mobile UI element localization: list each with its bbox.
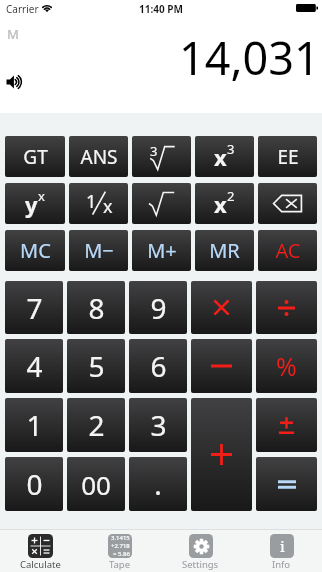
button[interactable]: 1 [69,183,128,224]
button[interactable]: GT [5,136,65,177]
staticText: AC [275,237,301,264]
other: Divide [277,299,296,317]
staticText: y [25,189,38,219]
button[interactable]: 3 [132,136,191,177]
other: Plus [211,444,232,465]
button[interactable]: 2 [67,398,125,452]
staticText: 11:40 PM [139,2,183,16]
button[interactable]: EE [258,136,317,177]
staticText: = 5.86 [113,550,130,558]
button[interactable]: Sound [4,69,30,95]
other: Backspace [273,194,302,213]
button[interactable]: 4 [5,339,63,393]
other: Minus [211,361,232,371]
button[interactable]: ANS [69,136,128,177]
staticText: Tape [109,558,131,571]
staticText: +2.718 [111,542,130,550]
staticText: 00 [81,467,111,502]
button[interactable]: 3.1415 [80,529,160,572]
staticText: 2 [227,187,235,205]
button[interactable]: 8 [67,281,125,334]
staticText: 0 [26,465,43,503]
button[interactable]: 5 [67,339,125,393]
button[interactable]: 1 [5,398,63,452]
other: Equals [278,479,296,490]
staticText: . [154,465,162,503]
staticText: EE [277,144,299,170]
staticText: 4 [26,347,43,385]
button[interactable]: % [256,339,317,393]
button[interactable]: Backspace [258,183,317,224]
button[interactable]: Equals [256,457,317,511]
staticText: 9 [150,289,167,327]
staticText: M− [84,237,114,264]
staticText: 7 [26,289,43,327]
staticText: M [7,25,19,43]
staticText: x [103,194,113,219]
button[interactable]: Calculate [0,529,80,572]
staticText: 1 [86,189,97,214]
staticText: 14,031 [179,27,320,88]
staticText: 8 [88,289,105,327]
button[interactable]: Multiply [191,281,252,334]
button[interactable] [132,183,191,224]
staticText: 3 [150,142,158,160]
staticText: 2 [88,406,105,444]
button[interactable]: 00 [67,457,125,511]
button[interactable]: 0 [5,457,63,511]
button[interactable]: Plus minus [256,398,317,452]
button[interactable]: x [195,136,254,177]
staticText: Calculate [20,558,61,571]
staticText: Carrier [6,2,39,16]
button[interactable]: AC [258,230,317,271]
staticText: GT [23,144,48,170]
staticText: i [280,536,285,556]
staticText: % [276,349,297,383]
button[interactable]: MR [195,230,254,271]
button[interactable]: Minus [191,339,252,393]
staticText: M+ [147,237,177,264]
button[interactable]: 6 [129,339,187,393]
button[interactable]: x [195,183,254,224]
button[interactable]: MC [5,230,65,271]
other: Multiply [213,299,230,316]
staticText: 1 [26,406,43,444]
button[interactable]: M− [69,230,128,271]
button[interactable]: . [129,457,187,511]
button[interactable]: y [5,183,65,224]
staticText: x [214,142,227,172]
staticText: 3.1415 [111,534,130,542]
button[interactable]: Plus [191,398,252,511]
staticText: Settings [182,558,219,571]
button[interactable]: i [241,529,322,572]
staticText: 3 [150,406,167,444]
staticText: Info [272,558,291,571]
staticText: MR [209,237,240,264]
button[interactable]: Settings [160,529,241,572]
staticText: 6 [150,347,167,385]
button[interactable]: 7 [5,281,63,334]
button[interactable]: M+ [132,230,191,271]
staticText: x [214,189,227,219]
staticText: MC [20,237,51,264]
staticText: 5 [88,347,105,385]
button[interactable]: 9 [129,281,187,334]
button[interactable]: 3 [129,398,187,452]
other: Plus minus [277,416,296,435]
button[interactable]: Divide [256,281,317,334]
staticText: ANS [80,144,118,170]
staticText: 3 [227,140,235,158]
staticText: x [38,187,45,205]
